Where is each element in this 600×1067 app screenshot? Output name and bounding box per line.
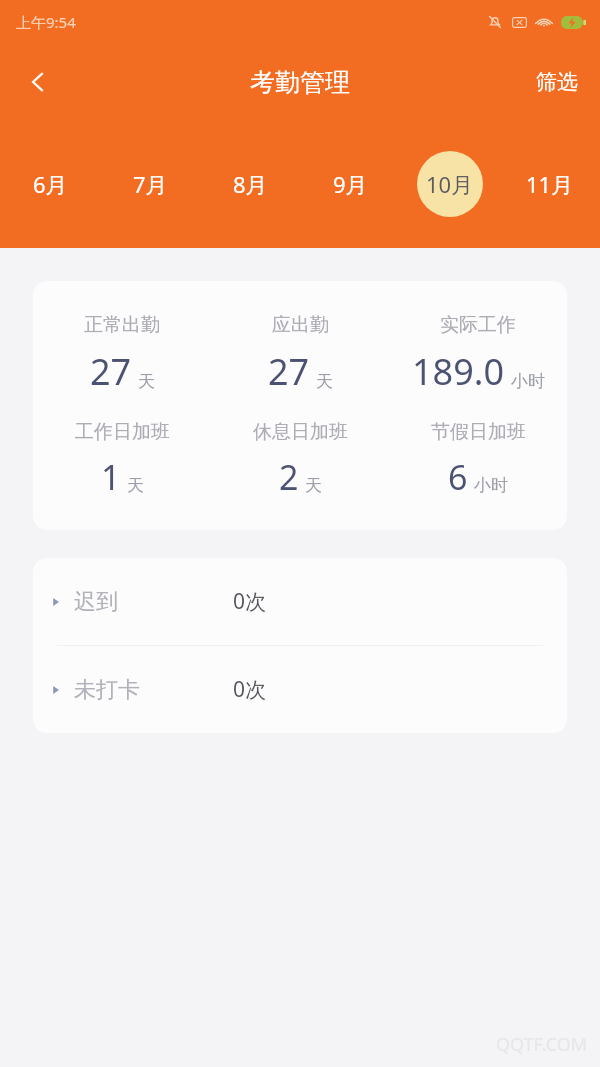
staticText: 天	[138, 371, 155, 392]
staticText: 未打卡	[74, 676, 140, 704]
staticText: 6	[448, 454, 468, 500]
staticText: 10月	[426, 169, 474, 199]
button[interactable]: 6月	[0, 120, 100, 248]
staticText: 27	[90, 347, 132, 396]
staticText: 0次	[233, 675, 267, 704]
staticText: 天	[127, 475, 144, 496]
staticText: QQTF.COM	[496, 1032, 588, 1057]
staticText: 考勤管理	[250, 67, 350, 98]
staticText: 筛选	[536, 69, 578, 95]
staticText: 6月	[33, 169, 68, 199]
staticText: 实际工作	[440, 313, 516, 337]
staticText: 27	[268, 347, 310, 396]
staticText: 节假日加班	[431, 420, 526, 444]
staticText: 1	[101, 454, 121, 500]
staticText: 上午9:54	[16, 12, 76, 32]
button[interactable]: 7月	[100, 120, 200, 248]
staticText: 7月	[133, 169, 168, 199]
button[interactable]: 迟到	[33, 558, 567, 645]
button[interactable]: 未打卡	[33, 646, 567, 733]
staticText: 天	[305, 475, 322, 496]
button[interactable]: 10月	[400, 120, 500, 248]
staticText: 2	[279, 454, 299, 500]
staticText: 8月	[233, 169, 268, 199]
button[interactable]: 筛选	[514, 57, 600, 107]
staticText: 9月	[333, 169, 368, 199]
staticText: 工作日加班	[75, 420, 170, 444]
staticText: 应出勤	[272, 313, 329, 337]
staticText: 11月	[526, 169, 574, 199]
button[interactable]: Back	[10, 54, 66, 110]
staticText: 休息日加班	[253, 420, 348, 444]
staticText: 迟到	[74, 588, 118, 616]
button[interactable]: 8月	[200, 120, 300, 248]
button[interactable]: 正常出勤	[33, 281, 567, 530]
staticText: 天	[316, 371, 333, 392]
staticText: 正常出勤	[84, 313, 160, 337]
staticText: 189.0	[412, 347, 505, 396]
staticText: 0次	[233, 587, 267, 616]
button[interactable]: 9月	[300, 120, 400, 248]
staticText: 小时	[511, 371, 545, 392]
staticText: 小时	[474, 475, 508, 496]
button[interactable]: 11月	[500, 120, 600, 248]
